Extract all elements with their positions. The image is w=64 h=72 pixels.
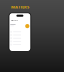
staticText: MATTERS	[11, 4, 29, 10]
staticText: Matters	[11, 19, 18, 21]
